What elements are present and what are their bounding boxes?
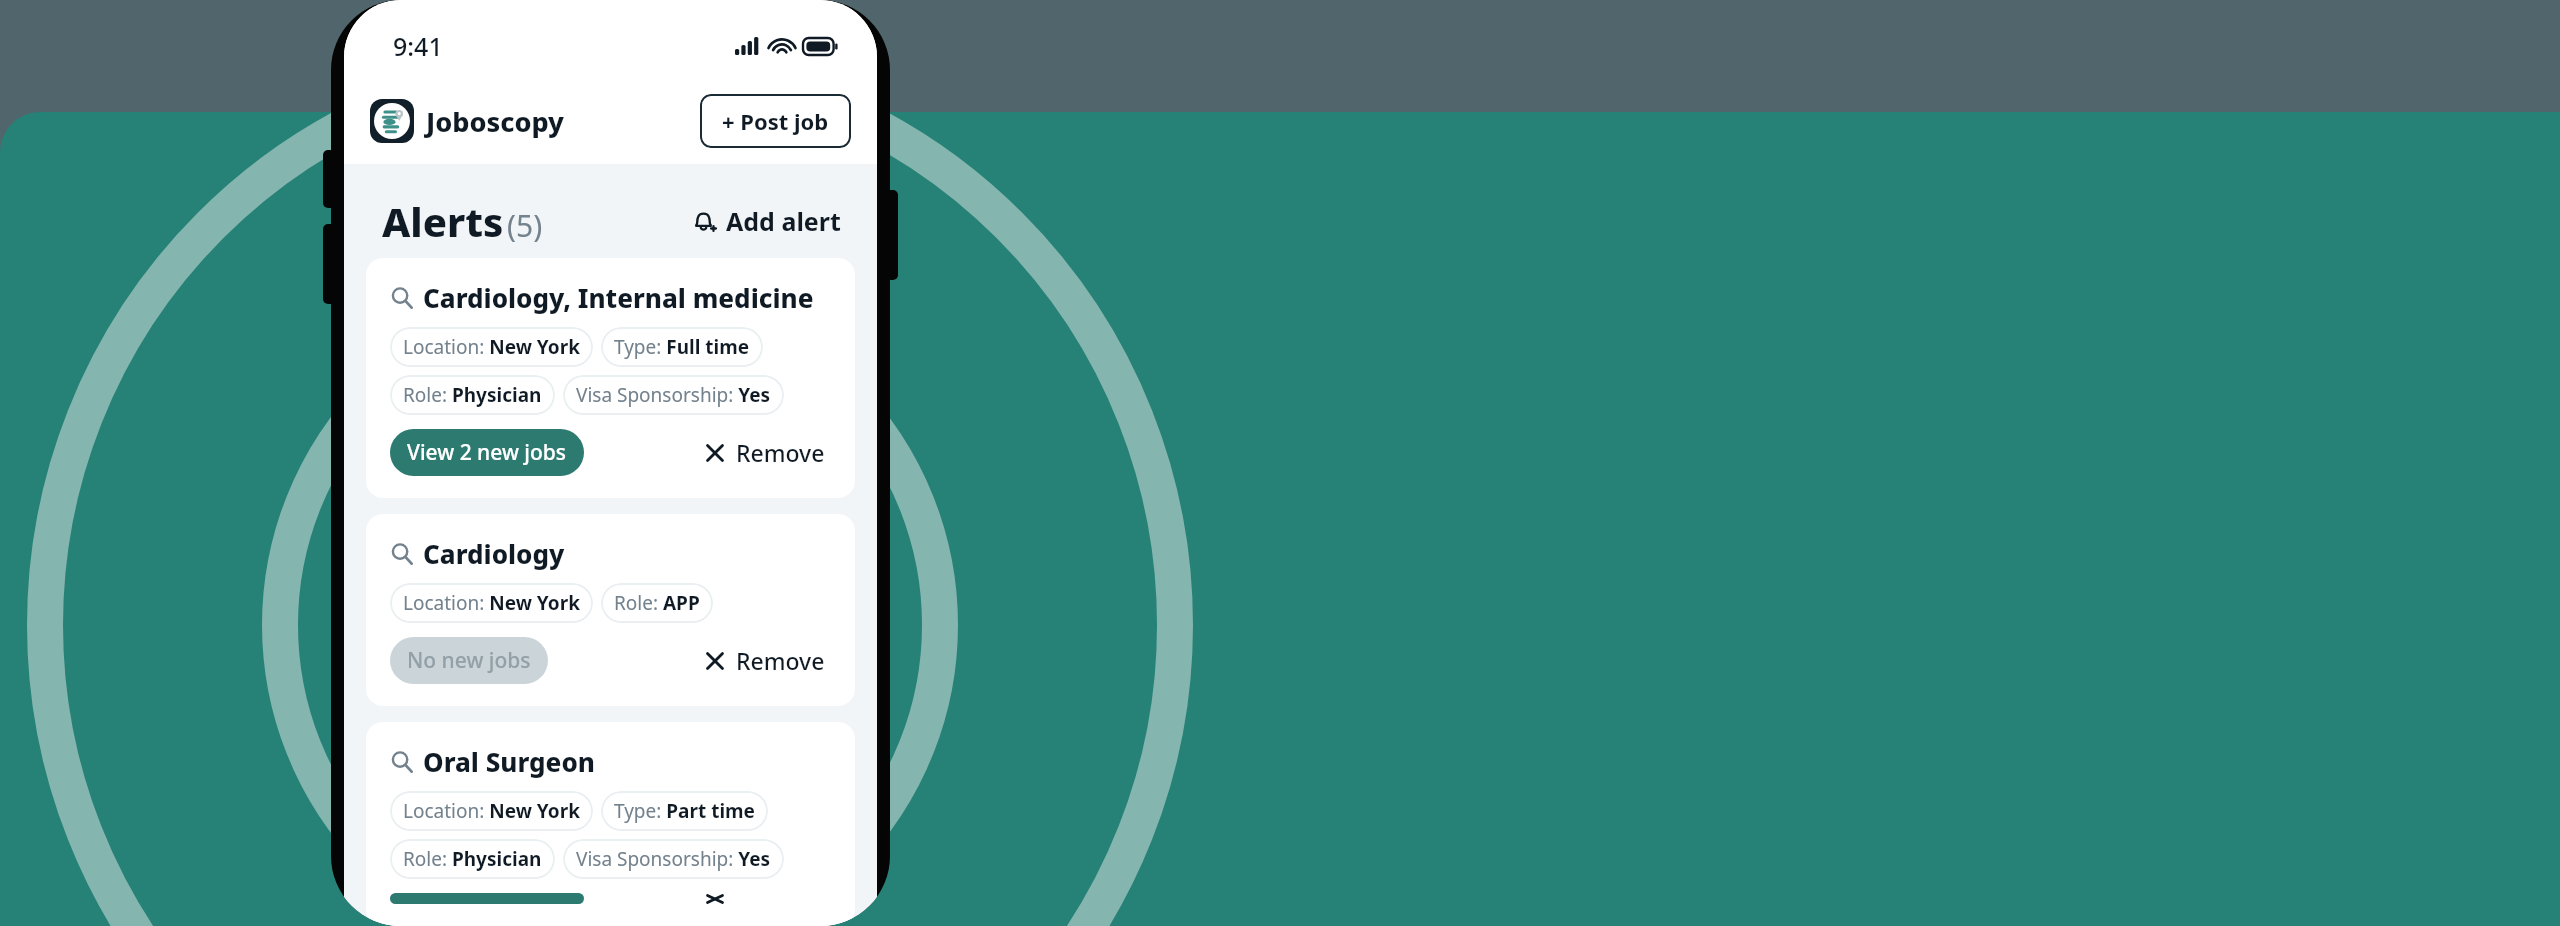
staticText: Alerts (5) [382, 194, 543, 248]
button[interactable]: + Post job [700, 94, 851, 148]
staticText: Location: New York [403, 334, 580, 360]
staticText: Remove [736, 437, 825, 468]
button[interactable]: Remove [698, 639, 831, 682]
staticText: Role: Physician [403, 846, 542, 872]
button[interactable]: Oral Surgeon [366, 722, 855, 926]
button[interactable]: Add alert [684, 198, 847, 244]
staticText: + Post job [722, 106, 829, 136]
staticText: 9:41 [393, 29, 443, 63]
staticText: Oral Surgeon [423, 744, 595, 779]
button[interactable]: View 2 new jobs [390, 429, 584, 476]
staticText: Visa Sponsorship: Yes [576, 846, 771, 872]
staticText: Type: Full time [614, 334, 750, 360]
staticText: Joboscopy [426, 103, 564, 140]
button[interactable]: Cardiology [366, 514, 855, 706]
staticText: View 2 new jobs [407, 438, 567, 467]
button[interactable]: Joboscopy [370, 99, 564, 143]
button[interactable]: Remove [698, 893, 831, 904]
staticText: Cardiology [423, 536, 565, 571]
staticText: Location: New York [403, 590, 580, 616]
staticText: Add alert [726, 204, 841, 238]
button[interactable]: Cardiology, Internal medicine [366, 258, 855, 498]
staticText: Role: APP [614, 590, 700, 616]
staticText: Role: Physician [403, 382, 542, 408]
button[interactable]: View 2 new jobs [390, 893, 584, 904]
staticText: Type: Part time [614, 798, 755, 824]
button[interactable]: Remove [698, 431, 831, 474]
staticText: Remove [736, 645, 825, 676]
staticText: No new jobs [407, 646, 531, 675]
staticText: Visa Sponsorship: Yes [576, 382, 771, 408]
staticText: Cardiology, Internal medicine [423, 280, 814, 315]
staticText: Location: New York [403, 798, 580, 824]
